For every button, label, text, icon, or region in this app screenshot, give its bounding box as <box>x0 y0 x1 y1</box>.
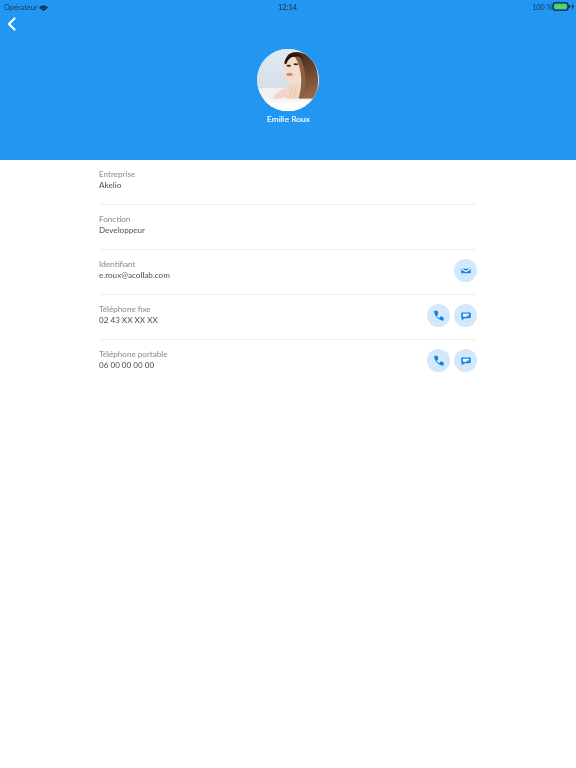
button[interactable]: Fonction <box>0 205 576 250</box>
button[interactable]: Téléphone portable <box>0 340 576 385</box>
button[interactable]: Entreprise <box>0 160 576 205</box>
staticText: Téléphone fixe <box>99 304 151 314</box>
staticText: 02 43 XX XX XX <box>99 315 158 325</box>
staticText: Identifiant <box>99 259 136 269</box>
button[interactable]: Call <box>427 304 450 327</box>
button[interactable]: Send email <box>454 259 477 282</box>
staticText: Developpeur <box>99 225 146 235</box>
staticText: Opérateur <box>4 3 38 12</box>
staticText: 06 00 00 00 00 <box>99 360 155 370</box>
staticText: e.roux@acollab.com <box>99 270 170 280</box>
button[interactable]: Back <box>0 12 24 36</box>
button[interactable]: Téléphone fixe <box>0 295 576 340</box>
button[interactable]: Send message <box>454 349 477 372</box>
staticText: Fonction <box>99 214 131 224</box>
staticText: 12:14 <box>278 3 298 12</box>
staticText: Emilie Roux <box>267 114 310 124</box>
staticText: Téléphone portable <box>99 349 168 359</box>
button[interactable]: Send message <box>454 304 477 327</box>
button[interactable]: Identifiant <box>0 250 576 295</box>
staticText: 100 % <box>532 3 553 12</box>
staticText: Entreprise <box>99 169 136 179</box>
button[interactable]: Call <box>427 349 450 372</box>
staticText: Akelio <box>99 180 122 190</box>
